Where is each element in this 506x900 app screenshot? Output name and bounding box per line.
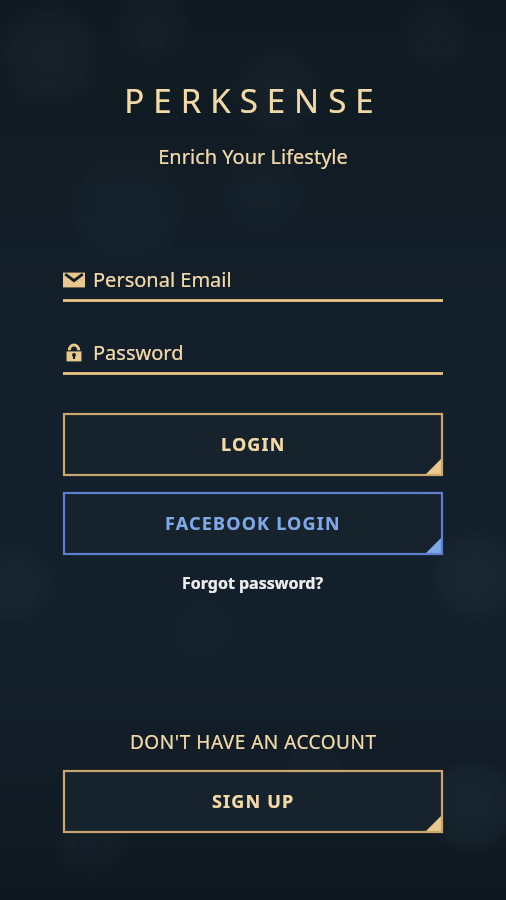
button[interactable]: Forgot password?	[172, 568, 334, 598]
staticText: PERKSENSE	[124, 78, 383, 123]
staticText: LOGIN	[221, 432, 286, 457]
button[interactable]: Facebook login	[63, 492, 443, 555]
button[interactable]: Sign up	[63, 770, 443, 833]
staticText: FACEBOOK LOGIN	[165, 511, 341, 536]
staticText: DON'T HAVE AN ACCOUNT	[130, 729, 377, 755]
staticText: Personal Email	[93, 266, 232, 293]
staticText: SIGN UP	[212, 789, 295, 814]
staticText: Forgot password?	[182, 572, 324, 594]
button[interactable]: Login	[63, 413, 443, 476]
staticText: Password	[93, 339, 184, 366]
button[interactable]: Personal Email	[63, 266, 443, 302]
button[interactable]: Password	[63, 339, 443, 375]
staticText: Enrich Your Lifestyle	[158, 143, 348, 170]
